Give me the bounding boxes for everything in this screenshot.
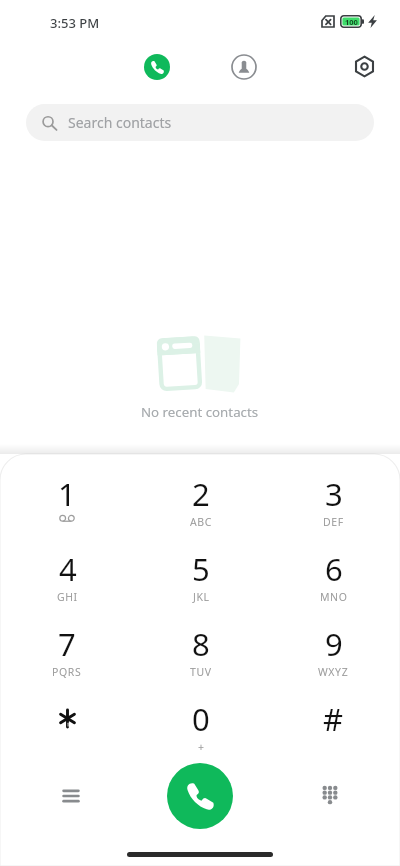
button[interactable]: Search contacts — [26, 104, 374, 141]
staticText: TUV — [190, 665, 212, 679]
staticText: 3:53 PM — [50, 14, 100, 32]
staticText: Search contacts — [68, 113, 172, 132]
staticText: 3 — [325, 473, 343, 515]
staticText: JKL — [193, 590, 210, 604]
button[interactable]: 1 — [0, 467, 134, 542]
button[interactable] — [0, 692, 134, 767]
staticText: GHI — [57, 590, 78, 604]
button[interactable]: Recents — [136, 46, 177, 87]
button[interactable]: 5 — [134, 542, 267, 617]
staticText: DEF — [323, 515, 344, 529]
button[interactable]: 8 — [134, 617, 267, 692]
staticText: + — [198, 740, 205, 754]
button[interactable]: Call — [167, 763, 233, 829]
staticText: 7 — [58, 623, 76, 665]
button[interactable]: 0 — [134, 692, 267, 767]
staticText: 5 — [192, 548, 210, 590]
staticText: 8 — [192, 623, 210, 665]
staticText: 0 — [192, 698, 210, 740]
staticText: 100 — [345, 17, 358, 27]
button[interactable]: 7 — [0, 617, 134, 692]
staticText: 6 — [325, 548, 343, 590]
button[interactable]: # — [267, 692, 400, 767]
staticText: MNO — [320, 590, 348, 604]
button[interactable]: 9 — [267, 617, 400, 692]
button[interactable]: Settings — [346, 48, 383, 85]
button[interactable]: Call history — [47, 772, 94, 819]
staticText: 1 — [58, 473, 76, 515]
button[interactable]: Show dialpad — [306, 772, 353, 819]
staticText: WXYZ — [318, 665, 349, 679]
button[interactable]: 4 — [0, 542, 134, 617]
button[interactable]: 6 — [267, 542, 400, 617]
staticText: # — [323, 698, 344, 740]
staticText: PQRS — [52, 665, 82, 679]
staticText: 4 — [59, 548, 77, 590]
staticText: 9 — [325, 623, 343, 665]
button[interactable]: 3 — [267, 467, 400, 542]
button[interactable]: 2 — [134, 467, 267, 542]
button[interactable]: Contacts — [223, 46, 264, 87]
staticText: ABC — [190, 515, 212, 529]
staticText: 2 — [192, 473, 210, 515]
staticText: No recent contacts — [141, 403, 259, 421]
